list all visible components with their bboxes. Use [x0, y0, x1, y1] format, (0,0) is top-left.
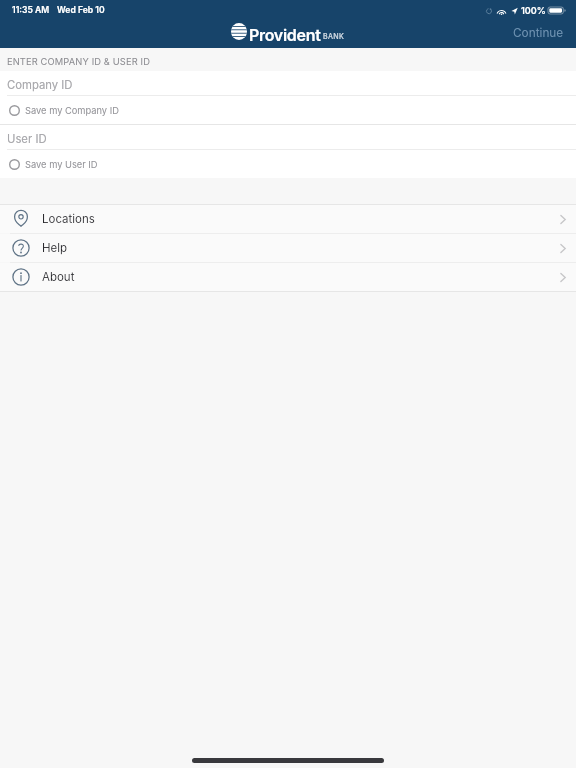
staticText: 11:35 AM [12, 5, 50, 15]
button[interactable]: User ID [0, 125, 576, 149]
other: Provident Bank logo [231, 23, 247, 40]
staticText: Wed Feb 10 [57, 5, 105, 15]
other: Save my Company ID [9, 105, 20, 116]
button[interactable]: Save my User ID [0, 150, 576, 178]
other: Location services [511, 7, 518, 15]
other: Open Locations [560, 215, 566, 224]
staticText: Save my User ID [25, 159, 98, 170]
staticText: Continue [513, 26, 564, 40]
button[interactable]: Continue [500, 23, 576, 46]
other: Locations icon [12, 210, 30, 228]
staticText: User ID [7, 132, 47, 146]
other: Open About [560, 273, 566, 282]
button[interactable]: Company ID [0, 71, 576, 95]
other: Open Help [560, 244, 566, 253]
staticText: Help [42, 241, 560, 255]
button[interactable]: Locations icon [0, 205, 576, 233]
staticText: Company ID [7, 78, 73, 92]
button[interactable]: Help icon [0, 234, 576, 262]
staticText: BANK [323, 32, 345, 41]
staticText: Provident [249, 25, 321, 44]
staticText: Locations [42, 212, 560, 226]
button[interactable]: About icon [0, 263, 576, 291]
other: Save my User ID [9, 159, 20, 170]
staticText: ENTER COMPANY ID & USER ID [7, 56, 151, 67]
other: Rotation lock [486, 7, 492, 15]
other: Help icon [12, 239, 30, 257]
staticText: About [42, 270, 560, 284]
staticText: 100% [521, 5, 546, 16]
staticText: Save my Company ID [25, 105, 119, 116]
button[interactable]: Save my Company ID [0, 96, 576, 124]
other: Battery 100 percent [548, 7, 565, 14]
other: About icon [12, 268, 30, 286]
other: Wi-Fi [497, 7, 506, 15]
